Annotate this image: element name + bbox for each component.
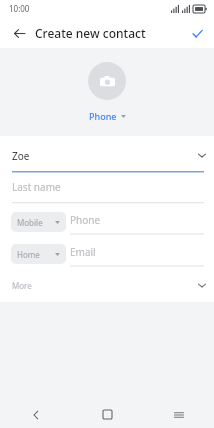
button[interactable]: Back (8, 22, 30, 44)
staticText: 10:00 (9, 3, 30, 14)
button[interactable]: More (0, 275, 214, 295)
button[interactable]: Email (70, 241, 204, 267)
staticText: Phone (70, 213, 101, 227)
staticText: Email (70, 245, 96, 259)
button[interactable]: Zoe (0, 142, 214, 173)
button[interactable]: Phone type (11, 212, 66, 232)
staticText: Home (17, 249, 55, 260)
button[interactable]: Add photo (88, 62, 126, 100)
button[interactable]: Home (72, 401, 143, 428)
button[interactable]: Phone (70, 209, 204, 235)
staticText: Last name (12, 180, 61, 194)
button[interactable]: Last name (0, 173, 214, 204)
staticText: Mobile (17, 217, 55, 228)
button[interactable]: Save contact (186, 22, 208, 44)
button[interactable]: Email type (11, 244, 66, 264)
button[interactable]: Phone (86, 109, 129, 123)
button[interactable]: Recent apps (143, 401, 214, 428)
staticText: Zoe (12, 149, 30, 163)
staticText: Create new contact (35, 25, 146, 41)
staticText: Phone (89, 110, 117, 122)
button[interactable]: Back (0, 401, 72, 428)
staticText: More (12, 280, 32, 291)
